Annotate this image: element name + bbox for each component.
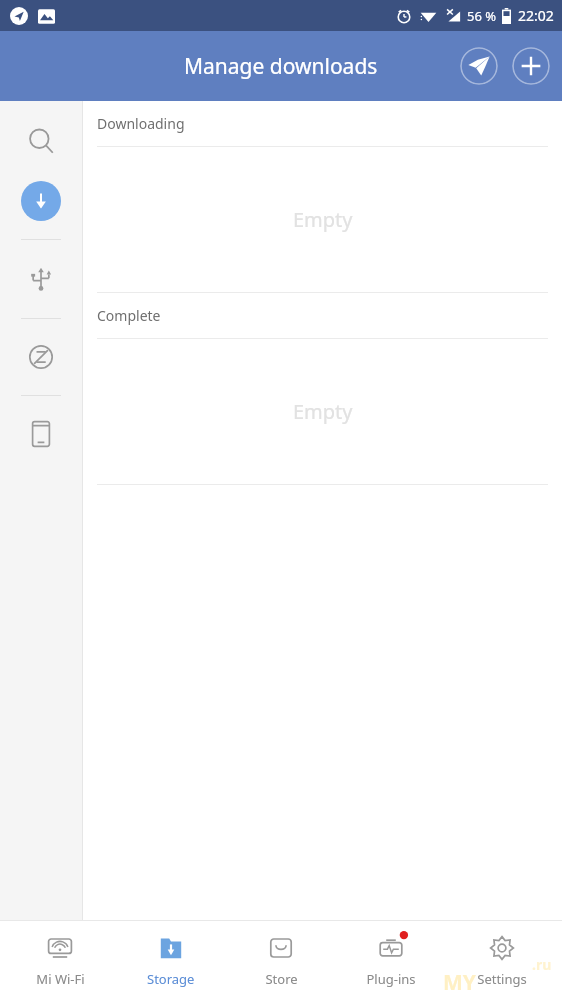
staticText: 56 %	[467, 7, 497, 25]
button[interactable]: Settings	[452, 921, 552, 1000]
staticText: .ru	[532, 955, 552, 974]
button[interactable]: Plug-ins	[341, 921, 441, 1000]
staticText: Empty	[293, 398, 353, 425]
button[interactable]: Device storage	[15, 408, 67, 460]
staticText: Downloading	[97, 114, 185, 133]
button[interactable]: Store	[231, 921, 331, 1000]
staticText: Manage downloads	[184, 52, 378, 81]
staticText: Mi Wi-Fi	[36, 970, 85, 988]
button[interactable]: Blocked	[15, 331, 67, 383]
button[interactable]: Search	[15, 115, 67, 167]
staticText: Storage	[147, 970, 195, 988]
button[interactable]: Mi Drop	[460, 47, 498, 85]
button[interactable]: Downloads	[21, 181, 61, 221]
button[interactable]: USB storage	[15, 254, 67, 306]
button[interactable]: Mi Wi-Fi	[10, 921, 110, 1000]
staticText: Store	[265, 970, 298, 988]
staticText: Plug-ins	[366, 970, 416, 988]
staticText: 22:02	[518, 6, 554, 25]
staticText: MY	[443, 968, 476, 997]
staticText: Empty	[293, 206, 353, 233]
staticText: Settings	[477, 970, 527, 988]
staticText: Complete	[97, 306, 161, 325]
button[interactable]: Add download	[512, 47, 550, 85]
button[interactable]: Storage	[121, 921, 221, 1000]
